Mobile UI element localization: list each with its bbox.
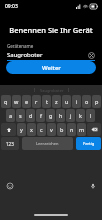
button[interactable]: n — [67, 123, 76, 136]
button[interactable]: c — [37, 123, 46, 136]
button[interactable]: Leerzeichen — [22, 137, 73, 150]
staticText: s — [19, 112, 22, 119]
staticText: u — [65, 98, 69, 105]
staticText: h — [59, 112, 63, 119]
staticText: m — [79, 126, 85, 133]
button[interactable]: a — [6, 109, 15, 122]
staticText: a — [9, 112, 13, 119]
button[interactable]: p — [92, 95, 101, 108]
staticText: z — [55, 98, 58, 105]
staticText: 09:03 — [5, 3, 18, 10]
button[interactable]: 123 — [1, 137, 19, 150]
button[interactable]: k — [76, 109, 85, 122]
button[interactable]: x — [27, 123, 36, 136]
button[interactable]: i — [72, 95, 81, 108]
button[interactable]: Umschalt — [1, 123, 16, 136]
staticText: Gerätename — [7, 43, 34, 49]
staticText: q — [4, 98, 8, 105]
button[interactable]: Fertig — [76, 137, 101, 150]
staticText: k — [79, 112, 82, 119]
button[interactable]: r — [32, 95, 41, 108]
staticText: i — [76, 98, 78, 105]
staticText: g — [49, 112, 53, 119]
button[interactable]: j — [66, 109, 75, 122]
button[interactable]: Eingabe löschen — [88, 52, 95, 59]
button[interactable]: o — [82, 95, 91, 108]
button[interactable]: e — [22, 95, 31, 108]
button[interactable]: f — [36, 109, 45, 122]
button[interactable]: q — [1, 95, 11, 108]
button[interactable]: Löschen — [87, 123, 101, 136]
staticText: l — [90, 112, 92, 119]
staticText: w — [14, 98, 19, 105]
button[interactable]: Gerätename — [7, 43, 95, 61]
staticText: d — [29, 112, 33, 119]
button[interactable]: Saugroboter — [35, 85, 68, 95]
staticText: b — [60, 126, 64, 133]
button[interactable]: y — [17, 123, 26, 136]
staticText: 123 — [6, 141, 14, 147]
staticText: Saugroboter — [7, 51, 88, 59]
staticText: n — [70, 126, 74, 133]
staticText: y — [20, 126, 23, 133]
button[interactable]: d — [26, 109, 35, 122]
button[interactable]: m — [77, 123, 86, 136]
button[interactable]: Weiter — [6, 61, 96, 74]
staticText: c — [40, 126, 43, 133]
button[interactable]: t — [42, 95, 51, 108]
staticText: e — [25, 98, 29, 105]
staticText: Saugroboter — [40, 88, 64, 93]
staticText: f — [40, 112, 42, 119]
staticText: j — [70, 112, 72, 119]
button[interactable]: h — [56, 109, 65, 122]
staticText: p — [95, 98, 99, 105]
staticText: v — [50, 126, 53, 133]
button[interactable]: Emoji — [6, 182, 13, 189]
staticText: r — [35, 98, 38, 105]
button[interactable]: u — [62, 95, 71, 108]
button[interactable]: g — [46, 109, 55, 122]
staticText: t — [46, 98, 48, 105]
staticText: Weiter — [42, 64, 61, 72]
button[interactable]: b — [57, 123, 66, 136]
staticText: x — [30, 126, 33, 133]
button[interactable]: z — [52, 95, 61, 108]
button[interactable]: s — [16, 109, 25, 122]
staticText: Fertig — [83, 141, 95, 147]
staticText: o — [85, 98, 89, 105]
staticText: Benennen Sie Ihr Gerät — [6, 25, 96, 35]
button[interactable]: w — [12, 95, 21, 108]
button[interactable]: Spracheingabe — [89, 182, 96, 189]
button[interactable]: v — [47, 123, 56, 136]
button[interactable]: l — [86, 109, 95, 122]
staticText: Leerzeichen — [36, 141, 59, 146]
